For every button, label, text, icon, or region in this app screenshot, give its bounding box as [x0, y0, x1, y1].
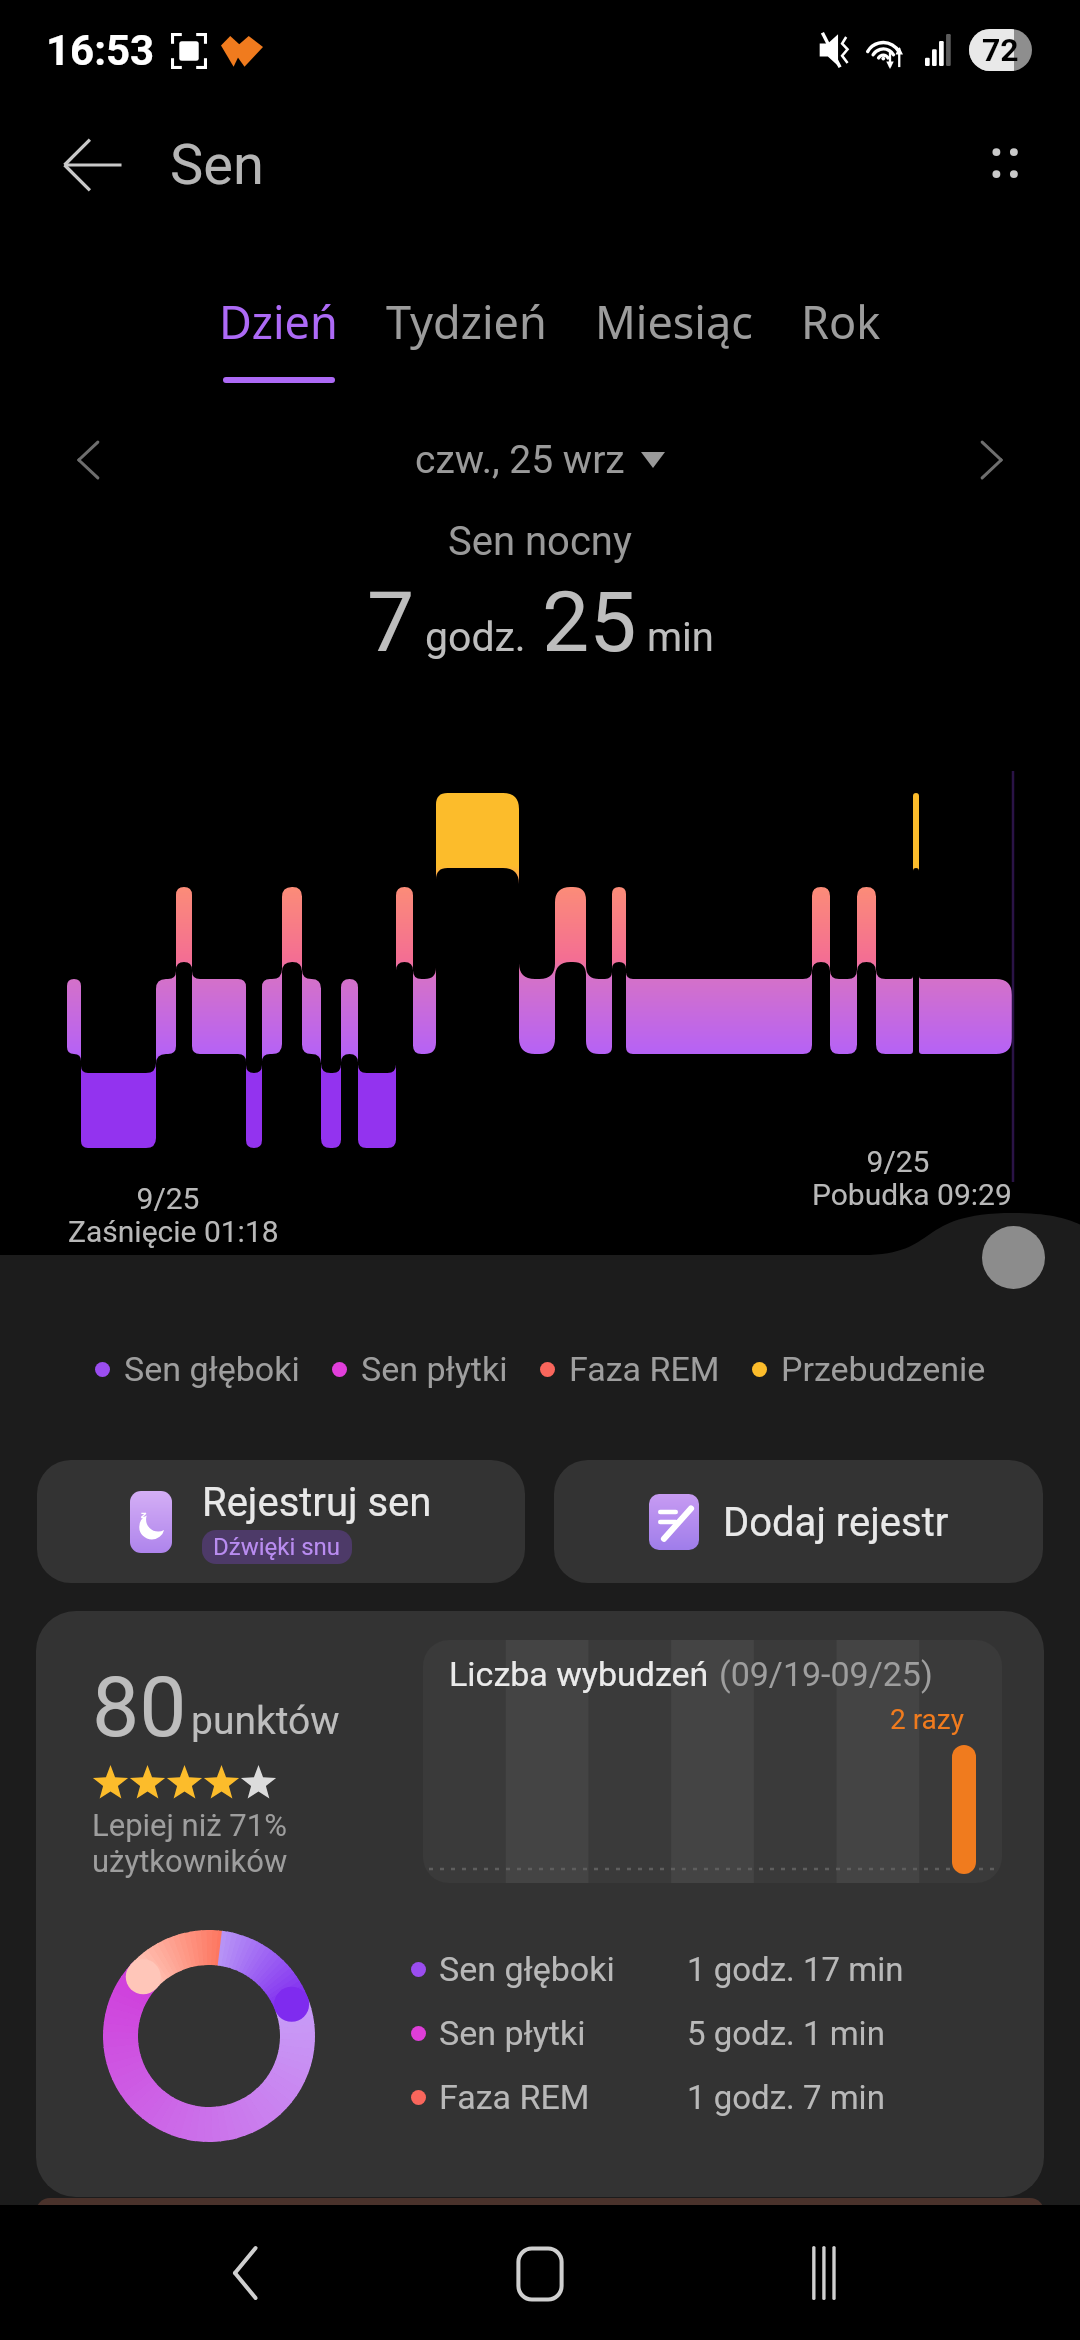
- staticText: 16:53: [46, 26, 155, 75]
- staticText: Sen płytki: [439, 2013, 586, 2053]
- staticText: min: [647, 614, 714, 661]
- staticText: 1 godz. 17 min: [687, 1950, 904, 1989]
- button[interactable]: Home: [492, 2225, 588, 2321]
- staticText: Dodaj rejestr: [723, 1499, 949, 1546]
- button[interactable]: Dzień: [219, 291, 338, 383]
- staticText: 7: [367, 573, 415, 671]
- staticText: 25: [542, 573, 637, 671]
- button[interactable]: Recent apps: [786, 2225, 882, 2321]
- staticText: Sen nocny: [448, 518, 632, 565]
- staticText: Pobudka 09:29: [812, 1177, 1012, 1212]
- staticText: Zaśnięcie 01:18: [68, 1214, 279, 1249]
- staticText: Dzień: [219, 291, 338, 352]
- staticText: Lepiej niż 71%: [92, 1807, 287, 1843]
- staticText: Rok: [801, 291, 881, 352]
- staticText: 5 godz. 1 min: [687, 2014, 885, 2053]
- staticText: 2 razy: [890, 1703, 964, 1736]
- staticText: 80: [92, 1658, 187, 1756]
- staticText: 9/25: [798, 1144, 998, 1179]
- staticText: 1 godz. 7 min: [687, 2078, 885, 2117]
- staticText: Sen: [170, 132, 264, 198]
- button[interactable]: Dodaj rejestr: [554, 1460, 1043, 1583]
- staticText: Dźwięki snu: [213, 1533, 341, 1561]
- staticText: czw., 25 wrz: [415, 437, 625, 483]
- button[interactable]: Expand: [982, 1226, 1045, 1289]
- staticText: Liczba wybudzeń: [449, 1654, 709, 1694]
- button[interactable]: Back: [198, 2225, 294, 2321]
- button[interactable]: Rejestruj sen: [37, 1460, 525, 1583]
- staticText: Sen płytki: [361, 1349, 508, 1389]
- button[interactable]: Tydzień: [386, 291, 547, 352]
- staticText: Faza REM: [439, 2077, 590, 2117]
- staticText: Faza REM: [569, 1349, 720, 1389]
- button[interactable]: Back: [62, 134, 124, 196]
- staticText: Rejestruj sen: [202, 1479, 432, 1526]
- staticText: 72: [982, 31, 1019, 69]
- staticText: Sen głęboki: [124, 1349, 300, 1389]
- staticText: Tydzień: [386, 291, 547, 352]
- staticText: punktów: [191, 1698, 340, 1744]
- staticText: użytkowników: [92, 1843, 288, 1879]
- button[interactable]: Next day: [962, 432, 1018, 488]
- button[interactable]: More options: [966, 127, 1042, 203]
- staticText: (09/19-09/25): [719, 1654, 933, 1694]
- button[interactable]: czw., 25 wrz: [415, 437, 665, 483]
- staticText: Sen głęboki: [439, 1949, 615, 1989]
- staticText: Przebudzenie: [781, 1349, 986, 1389]
- button[interactable]: Miesiąc: [595, 291, 753, 352]
- staticText: godz.: [425, 613, 526, 661]
- button[interactable]: Previous day: [62, 432, 118, 488]
- staticText: Miesiąc: [595, 291, 753, 352]
- staticText: 9/25: [68, 1181, 268, 1216]
- button[interactable]: Rok: [801, 291, 881, 352]
